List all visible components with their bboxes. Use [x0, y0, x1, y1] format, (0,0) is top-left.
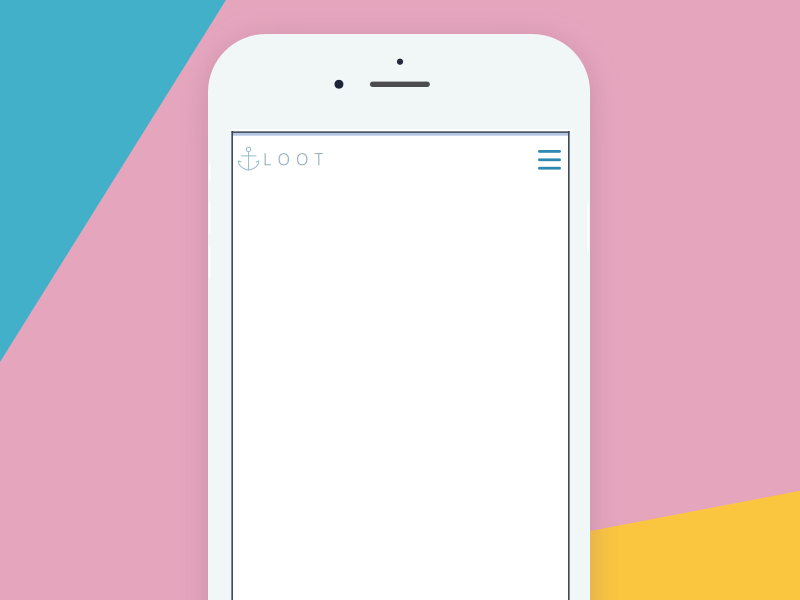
staticText: O: [296, 148, 308, 170]
staticText: T: [314, 148, 322, 170]
button[interactable]: Menu: [530, 142, 569, 178]
staticText: L: [263, 148, 271, 170]
staticText: O: [277, 148, 289, 170]
button[interactable]: L: [236, 142, 325, 177]
